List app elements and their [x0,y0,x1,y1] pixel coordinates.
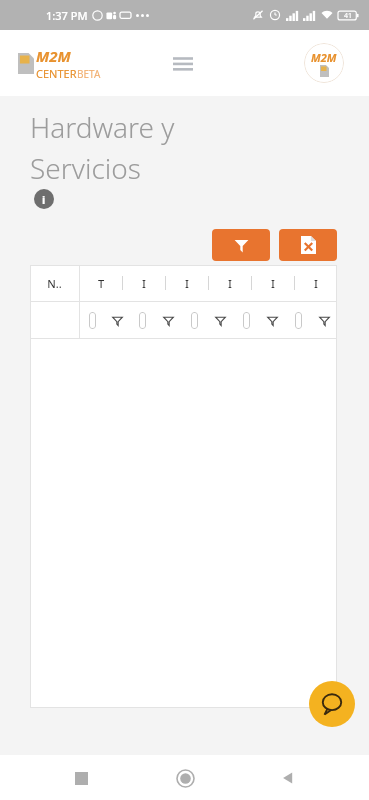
staticText: M2M [36,46,71,66]
staticText: BETA [77,67,101,81]
button[interactable]: Profile [304,43,344,83]
button[interactable]: I [123,265,165,301]
button[interactable]: Filter options [259,302,285,338]
button[interactable]: Menu [163,43,203,83]
button[interactable]: Filter value [139,312,146,329]
staticText: Hardware y Servicios [30,108,179,187]
button[interactable]: I [209,265,251,301]
button[interactable]: Filter value [243,312,250,329]
button[interactable]: Filter options [311,302,337,338]
button[interactable]: I [252,265,294,301]
button[interactable]: M2M [18,46,101,81]
button[interactable]: Filter options [207,302,233,338]
button[interactable]: Export to Excel [279,229,337,261]
button[interactable]: Home [163,756,207,800]
button[interactable]: N.. [30,265,79,301]
staticText: N.. [47,276,62,291]
button[interactable]: Recent apps [59,756,103,800]
button[interactable]: Chat support [309,681,355,727]
button[interactable]: Information [34,189,54,209]
button[interactable]: Filter options [155,302,181,338]
button[interactable]: T [80,265,122,301]
button[interactable]: Filter value [89,312,96,329]
staticText: CENTER [36,66,77,81]
staticText: I [228,276,232,291]
staticText: T [98,276,105,291]
button[interactable]: Filter value [191,312,198,329]
staticText: I [142,276,146,291]
button[interactable]: Back [266,756,310,800]
button[interactable]: Filter value [295,312,302,329]
staticText: I [271,276,275,291]
button[interactable]: Filter options [105,302,130,338]
button[interactable]: I [166,265,208,301]
staticText: 1:37 PM [46,8,88,23]
button[interactable]: I [295,265,337,301]
button[interactable]: Filter [212,229,270,261]
staticText: i [42,192,46,207]
staticText: M2M [311,50,337,65]
staticText: 41 [344,11,353,21]
staticText: I [314,276,318,291]
staticText: I [185,276,189,291]
